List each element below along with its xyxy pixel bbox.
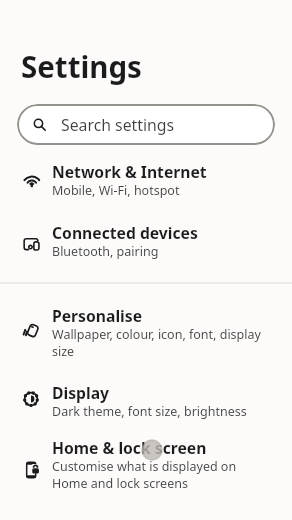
staticText: Dark theme, font size, brightness xyxy=(52,403,247,420)
button[interactable]: Search settings xyxy=(17,104,275,145)
staticText: Mobile, Wi-Fi, hotspot xyxy=(52,182,180,199)
staticText: Home & lock screen xyxy=(52,437,207,458)
button[interactable]: Home & lock screen xyxy=(0,430,292,501)
button[interactable]: Display xyxy=(0,369,292,430)
button[interactable]: Network & Internet xyxy=(0,151,292,209)
staticText: Display xyxy=(52,382,109,403)
staticText: Bluetooth, pairing xyxy=(52,243,159,260)
staticText: Customise what is displayed on Home and … xyxy=(52,458,237,491)
button[interactable]: Personalise xyxy=(0,294,292,369)
staticText: Network & Internet xyxy=(52,161,207,182)
staticText: Search settings xyxy=(61,114,175,136)
staticText: Connected devices xyxy=(52,222,198,243)
staticText: Settings xyxy=(21,46,142,86)
staticText: Wallpaper, colour, icon, font, display s… xyxy=(52,326,261,359)
button[interactable]: Connected devices xyxy=(0,209,292,270)
staticText: Personalise xyxy=(52,305,142,326)
